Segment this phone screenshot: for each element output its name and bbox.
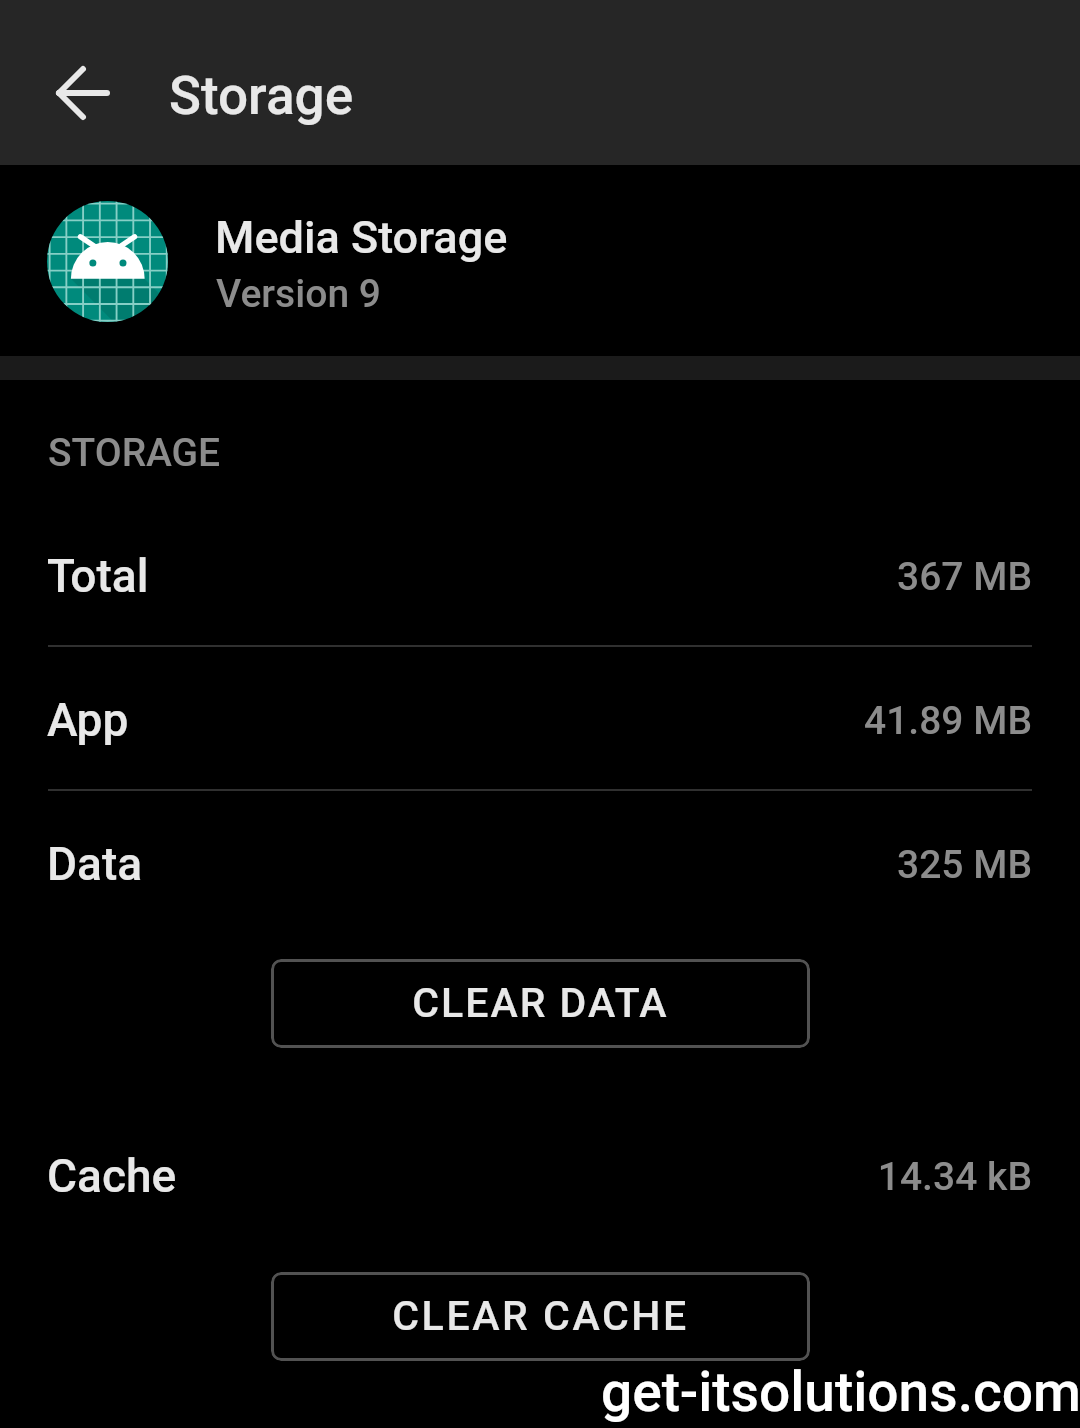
button[interactable]: App bbox=[0, 648, 1080, 792]
button[interactable]: Data bbox=[0, 792, 1080, 936]
staticText: get-itsolutions.com bbox=[1, 1360, 1080, 1424]
staticText: CLEAR CACHE bbox=[271, 1292, 810, 1340]
button[interactable]: CLEAR DATA bbox=[271, 959, 810, 1048]
staticText: Storage bbox=[169, 65, 354, 127]
button[interactable]: Cache bbox=[0, 1104, 1080, 1248]
staticText: 325 MB bbox=[0, 842, 1032, 888]
button[interactable]: CLEAR CACHE bbox=[271, 1272, 810, 1361]
staticText: Cache bbox=[47, 1149, 177, 1203]
button[interactable]: Back bbox=[14, 24, 152, 162]
button[interactable]: Total bbox=[0, 504, 1080, 648]
staticText: Total bbox=[47, 549, 149, 603]
staticText: Data bbox=[47, 837, 143, 891]
staticText: STORAGE bbox=[48, 430, 221, 476]
button[interactable] bbox=[0, 165, 1080, 356]
staticText: Media Storage bbox=[215, 211, 508, 264]
staticText: CLEAR DATA bbox=[271, 979, 810, 1027]
staticText: App bbox=[47, 693, 129, 747]
staticText: Version 9 bbox=[216, 271, 381, 317]
staticText: 14.34 kB bbox=[0, 1154, 1032, 1200]
staticText: 41.89 MB bbox=[0, 698, 1032, 744]
staticText: 367 MB bbox=[0, 554, 1032, 600]
